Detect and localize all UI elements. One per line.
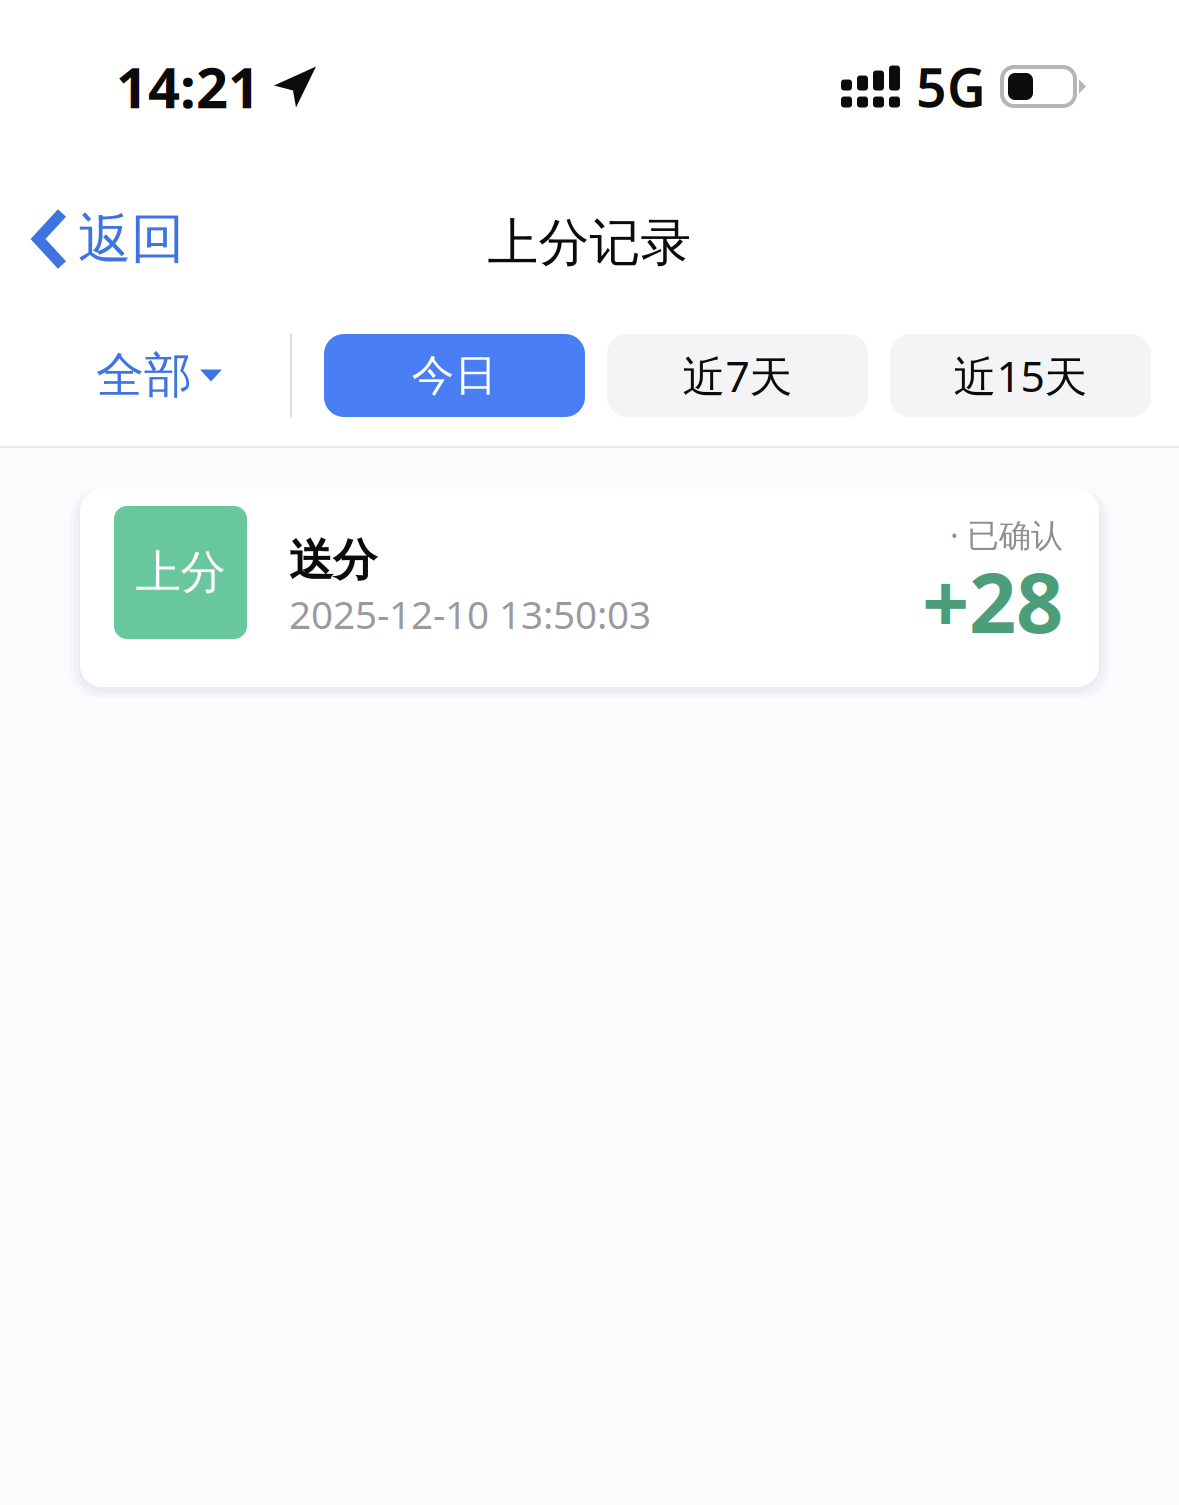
button[interactable]: 全部: [96, 346, 222, 405]
staticText: · 已确认: [950, 513, 1063, 556]
staticText: 送分: [289, 533, 377, 587]
button[interactable]: 近7天: [607, 334, 868, 417]
button[interactable]: 上分: [80, 489, 1099, 687]
staticText: 近15天: [953, 347, 1087, 404]
staticText: 5G: [916, 51, 986, 122]
staticText: 上分: [135, 545, 225, 600]
button[interactable]: 今日: [324, 334, 585, 417]
button[interactable]: 返回: [10, 192, 206, 286]
staticText: 返回: [78, 206, 184, 272]
staticText: 全部: [96, 346, 192, 405]
button[interactable]: 近15天: [890, 334, 1151, 417]
staticText: 今日: [411, 349, 497, 402]
staticText: 2025-12-10 13:50:03: [289, 588, 651, 640]
staticText: 近7天: [682, 347, 792, 404]
staticText: +28: [922, 546, 1063, 656]
staticText: 14:21: [116, 49, 260, 124]
staticText: 上分记录: [487, 212, 691, 274]
